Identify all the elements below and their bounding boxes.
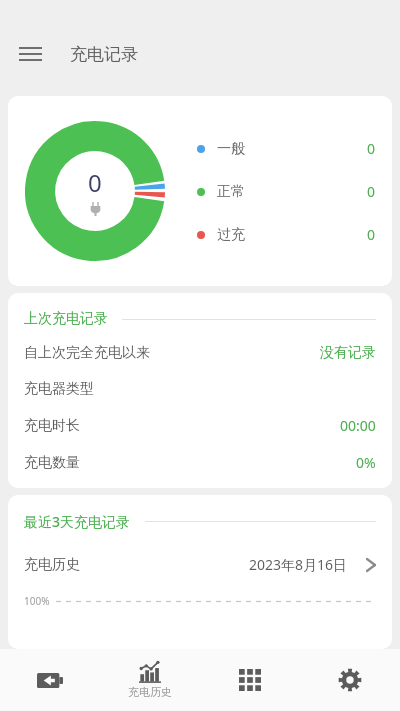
staticText: 充电历史	[128, 685, 172, 699]
staticText: 充电历史	[24, 556, 80, 574]
button[interactable]: 充电历史	[24, 551, 376, 578]
staticText: 2023年8月16日	[249, 555, 348, 574]
staticText: 0	[367, 182, 376, 201]
staticText: 一般	[217, 140, 245, 158]
staticText: 充电记录	[70, 44, 138, 65]
staticText: 充电时长	[24, 417, 80, 435]
staticText: 0	[367, 139, 376, 158]
staticText: 0	[367, 225, 376, 244]
staticText: 上次充电记录	[24, 310, 108, 328]
staticText: 00:00	[340, 416, 376, 435]
button[interactable]: Menu	[12, 36, 48, 72]
staticText: 充电器类型	[24, 380, 94, 398]
staticText: 最近3天充电记录	[24, 512, 131, 531]
staticText: 没有记录	[320, 344, 376, 362]
staticText: 100%	[24, 594, 50, 608]
button[interactable]: 充电历史	[100, 649, 200, 711]
staticText: 过充	[217, 226, 245, 244]
staticText: 0	[88, 166, 102, 199]
staticText: 自上次完全充电以来	[24, 344, 150, 362]
button[interactable]: Apps	[200, 649, 300, 711]
staticText: 充电数量	[24, 454, 80, 472]
button[interactable]: Charging	[0, 649, 100, 711]
staticText: 正常	[217, 183, 245, 201]
button[interactable]: Settings	[300, 649, 400, 711]
staticText: 0%	[356, 453, 376, 472]
